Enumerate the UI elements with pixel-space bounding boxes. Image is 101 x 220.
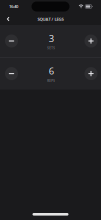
- staticText: 3: [49, 32, 54, 45]
- staticText: 16:40: [9, 4, 18, 9]
- staticText: SETS: [47, 46, 55, 50]
- button[interactable]: Decrease REPS: [0, 61, 23, 87]
- button[interactable]: Increase SETS: [79, 28, 101, 54]
- button[interactable]: Back: [0, 13, 16, 25]
- staticText: REPS: [47, 79, 55, 83]
- button[interactable]: Increase REPS: [79, 61, 101, 87]
- button[interactable]: Decrease SETS: [0, 28, 23, 54]
- staticText: SQUAT / LEGS: [37, 16, 63, 22]
- staticText: 6: [49, 64, 54, 77]
